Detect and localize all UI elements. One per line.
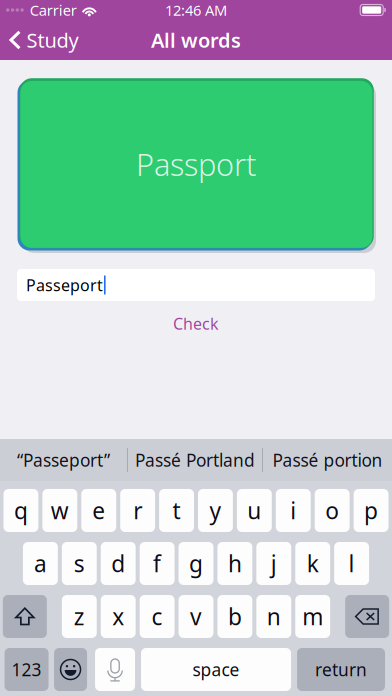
button[interactable]: w bbox=[42, 489, 77, 532]
button[interactable]: h bbox=[217, 542, 252, 585]
button[interactable]: “Passeport” bbox=[0, 439, 127, 481]
staticText: k bbox=[307, 548, 319, 578]
staticText: i bbox=[290, 495, 296, 525]
button[interactable]: Delete bbox=[345, 595, 389, 638]
staticText: r bbox=[133, 495, 142, 525]
staticText: g bbox=[189, 548, 203, 578]
button[interactable]: m bbox=[295, 595, 330, 638]
button[interactable]: Check bbox=[157, 307, 235, 340]
staticText: n bbox=[267, 601, 281, 631]
staticText: p bbox=[364, 495, 378, 525]
button[interactable]: l bbox=[334, 542, 369, 585]
button[interactable]: a bbox=[23, 542, 58, 585]
staticText: f bbox=[153, 548, 161, 578]
button[interactable]: j bbox=[256, 542, 291, 585]
button[interactable]: space bbox=[141, 648, 291, 691]
staticText: 12:46 AM bbox=[165, 0, 227, 20]
staticText: Passé Portland bbox=[135, 448, 255, 471]
staticText: e bbox=[92, 495, 105, 525]
staticText: u bbox=[247, 495, 261, 525]
button[interactable]: Dictate bbox=[95, 648, 135, 691]
staticText: Carrier bbox=[30, 0, 77, 20]
button[interactable]: v bbox=[178, 595, 213, 638]
button[interactable]: c bbox=[140, 595, 174, 638]
button[interactable]: q bbox=[3, 489, 38, 532]
staticText: t bbox=[173, 495, 181, 525]
button[interactable]: k bbox=[295, 542, 330, 585]
button[interactable]: y bbox=[198, 489, 233, 532]
button[interactable]: Passé Portland bbox=[128, 439, 262, 481]
button[interactable]: x bbox=[101, 595, 136, 638]
button[interactable]: n bbox=[256, 595, 291, 638]
button[interactable]: g bbox=[179, 542, 213, 585]
staticText: j bbox=[271, 548, 277, 578]
staticText: o bbox=[325, 495, 339, 525]
button[interactable]: f bbox=[140, 542, 175, 585]
button[interactable]: e bbox=[81, 489, 116, 532]
staticText: x bbox=[112, 601, 124, 631]
button[interactable]: return bbox=[297, 648, 385, 691]
staticText: a bbox=[34, 548, 47, 578]
staticText: s bbox=[74, 548, 85, 578]
staticText: m bbox=[302, 601, 323, 631]
staticText: z bbox=[74, 601, 85, 631]
staticText: l bbox=[349, 548, 355, 578]
button[interactable]: s bbox=[62, 542, 97, 585]
button[interactable]: i bbox=[276, 489, 311, 532]
staticText: Passport bbox=[136, 144, 256, 184]
button[interactable]: Passé portion bbox=[263, 439, 392, 481]
button[interactable]: 123 bbox=[4, 648, 48, 691]
staticText: 123 bbox=[11, 658, 41, 681]
staticText: d bbox=[111, 548, 125, 578]
button[interactable]: z bbox=[62, 595, 97, 638]
button[interactable]: u bbox=[237, 489, 272, 532]
staticText: Passé portion bbox=[272, 448, 382, 471]
staticText: return bbox=[315, 658, 367, 681]
button[interactable]: o bbox=[315, 489, 350, 532]
button[interactable]: Emoji bbox=[54, 648, 87, 691]
staticText: w bbox=[51, 495, 69, 525]
staticText: Check bbox=[173, 313, 219, 334]
staticText: q bbox=[14, 495, 28, 525]
staticText: b bbox=[228, 601, 242, 631]
button[interactable]: Study bbox=[0, 20, 88, 60]
button[interactable]: Shift bbox=[3, 595, 47, 638]
button[interactable]: b bbox=[217, 595, 252, 638]
button[interactable]: t bbox=[159, 489, 194, 532]
staticText: “Passeport” bbox=[17, 448, 110, 471]
button[interactable]: p bbox=[354, 489, 388, 532]
button[interactable]: d bbox=[101, 542, 136, 585]
staticText: Passeport bbox=[26, 274, 103, 296]
staticText: space bbox=[192, 658, 239, 681]
staticText: h bbox=[228, 548, 242, 578]
staticText: Study bbox=[26, 27, 78, 53]
staticText: All words bbox=[151, 27, 241, 53]
button[interactable]: r bbox=[120, 489, 155, 532]
staticText: y bbox=[209, 495, 221, 525]
staticText: v bbox=[190, 601, 202, 631]
staticText: c bbox=[152, 601, 163, 631]
